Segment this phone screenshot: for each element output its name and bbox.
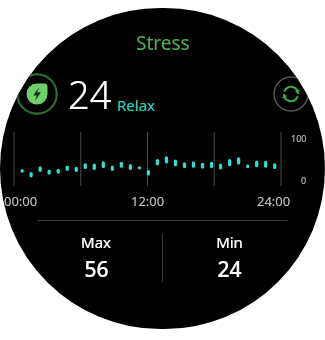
staticText: Min — [216, 232, 243, 252]
staticText: 24 — [217, 255, 242, 284]
button[interactable]: Max — [30, 232, 162, 284]
staticText: Max — [81, 232, 111, 252]
button[interactable]: 100 — [14, 132, 307, 190]
staticText: 24:00 — [257, 192, 291, 210]
staticText: 00:00 — [4, 192, 38, 210]
button[interactable]: Min — [163, 232, 295, 284]
staticText: 24 — [68, 68, 112, 120]
staticText: 56 — [84, 255, 109, 284]
staticText: Stress — [136, 30, 190, 56]
staticText: Relax — [117, 95, 156, 115]
staticText: 12:00 — [131, 192, 165, 210]
button[interactable]: Refresh — [273, 76, 309, 112]
staticText: 100 — [291, 132, 307, 144]
button[interactable]: Stress level — [16, 73, 58, 115]
staticText: 0 — [301, 174, 307, 186]
